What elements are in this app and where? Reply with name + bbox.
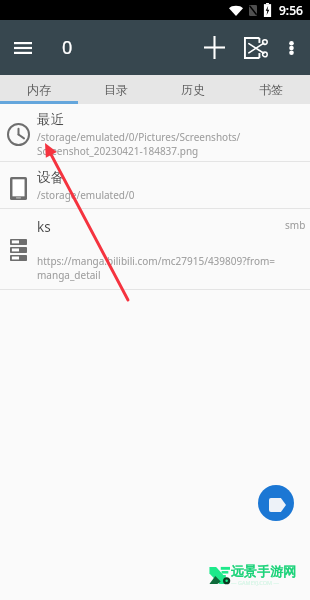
button[interactable]: Menu: [0, 20, 46, 75]
button[interactable]: Cut: [237, 20, 273, 75]
staticText: — GAMEYJ.COM —: [231, 579, 279, 586]
staticText: 9:56: [279, 2, 303, 18]
staticText: manga_detail: [37, 268, 101, 282]
staticText: 目录: [104, 82, 128, 97]
staticText: 最近: [37, 111, 64, 128]
button[interactable]: ks: [0, 209, 310, 289]
button[interactable]: 书签: [232, 75, 310, 104]
staticText: 远景手游网: [231, 563, 296, 579]
button[interactable]: 内存: [0, 75, 77, 104]
button[interactable]: 最近: [0, 104, 310, 161]
staticText: /storage/emulated/0: [37, 188, 135, 202]
staticText: Screenshot_20230421-184837.png: [37, 144, 199, 158]
button[interactable]: 历史: [154, 75, 232, 104]
staticText: smb: [285, 218, 306, 232]
staticText: 0: [62, 35, 73, 60]
staticText: https://manga.bilibili.com/mc27915/43980…: [37, 254, 276, 268]
staticText: 书签: [259, 82, 283, 97]
button[interactable]: Tag: [258, 485, 294, 521]
staticText: 设备: [37, 169, 64, 186]
button[interactable]: Add: [195, 20, 233, 75]
staticText: 历史: [181, 82, 205, 97]
button[interactable]: 设备: [0, 162, 310, 208]
staticText: ks: [37, 218, 51, 236]
staticText: 内存: [27, 82, 51, 97]
staticText: /storage/emulated/0/Pictures/Screenshots…: [37, 130, 241, 144]
button[interactable]: 目录: [77, 75, 154, 104]
button[interactable]: More options: [279, 20, 303, 75]
